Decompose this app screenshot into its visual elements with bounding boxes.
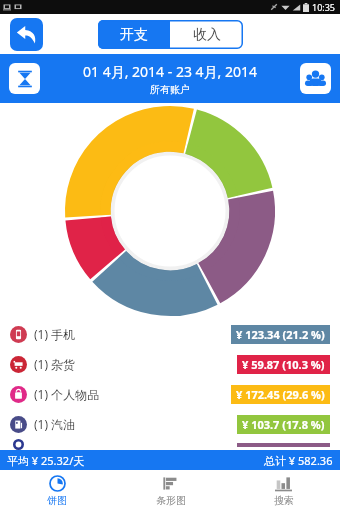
staticText: (1) 手机 bbox=[34, 326, 76, 342]
staticText: ¥ 103.7 (17.8 %) bbox=[242, 417, 325, 432]
button[interactable]: 条形图 bbox=[114, 470, 227, 512]
button[interactable]: Back bbox=[10, 18, 43, 51]
staticText: ¥ 123.34 (21.2 %) bbox=[236, 327, 325, 342]
button[interactable]: 搜索 bbox=[227, 470, 340, 512]
staticText: 饼图 bbox=[47, 494, 67, 507]
staticText: 01 4月, 2014 - 23 4月, 2014 bbox=[83, 62, 257, 81]
button[interactable]: Accounts bbox=[300, 63, 331, 94]
button[interactable] bbox=[0, 439, 340, 450]
staticText: (1) 汽油 bbox=[34, 416, 76, 432]
staticText: (1) 杂货 bbox=[34, 356, 76, 372]
button[interactable]: (1) 汽油 bbox=[0, 409, 340, 439]
staticText: 开支 bbox=[120, 26, 148, 44]
staticText: 总计 ¥ 582.36 bbox=[264, 453, 333, 468]
staticText: 条形图 bbox=[156, 494, 186, 507]
staticText: 10:35 bbox=[312, 1, 336, 13]
button[interactable]: 饼图 bbox=[0, 470, 114, 512]
button[interactable]: Date range bbox=[9, 63, 40, 94]
button[interactable]: 收入 bbox=[170, 20, 243, 49]
button[interactable]: 开支 bbox=[98, 20, 170, 49]
button[interactable]: (1) 杂货 bbox=[0, 349, 340, 379]
staticText: ¥ 172.45 (29.6 %) bbox=[236, 387, 325, 402]
button[interactable]: (1) 个人物品 bbox=[0, 379, 340, 409]
staticText: (1) 个人物品 bbox=[34, 386, 100, 402]
staticText: 收入 bbox=[193, 26, 221, 44]
staticText: 所有账户 bbox=[150, 83, 190, 96]
staticText: 平均 ¥ 25.32/天 bbox=[7, 453, 85, 468]
staticText: ¥ 59.87 (10.3 %) bbox=[242, 357, 325, 372]
button[interactable]: (1) 手机 bbox=[0, 319, 340, 349]
staticText: 搜索 bbox=[274, 494, 294, 507]
